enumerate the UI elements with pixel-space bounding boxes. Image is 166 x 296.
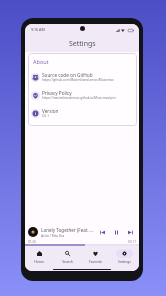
staticText: Home bbox=[34, 259, 44, 264]
staticText: 01:26 bbox=[28, 240, 36, 243]
staticText: Lonely Together (Feat. R... bbox=[41, 227, 95, 233]
staticText: Privacy Policy bbox=[42, 90, 72, 96]
staticText: 9:16 AM bbox=[31, 27, 45, 32]
button[interactable]: Settings bbox=[110, 249, 139, 264]
staticText: 0.0.1 bbox=[42, 114, 49, 118]
button[interactable]: Favorite bbox=[81, 249, 110, 264]
staticText: Favorite bbox=[89, 259, 102, 264]
button[interactable]: Source code on GitHub bbox=[28, 68, 137, 86]
staticText: Settings bbox=[69, 39, 96, 49]
staticText: Settings bbox=[118, 259, 131, 264]
staticText: https://github.com/MaximilianoLemos/Musi… bbox=[42, 78, 114, 82]
button[interactable]: Privacy Policy bbox=[28, 86, 137, 104]
button[interactable]: Version bbox=[28, 104, 137, 122]
button[interactable]: Search bbox=[53, 249, 81, 264]
staticText: About bbox=[33, 58, 49, 65]
staticText: Search bbox=[62, 259, 73, 264]
staticText: Source code on GitHub bbox=[42, 72, 93, 78]
button[interactable]: Previous bbox=[95, 225, 109, 239]
staticText: Avicii / Rita Ora bbox=[41, 233, 65, 237]
staticText: Version bbox=[42, 108, 59, 114]
staticText: 03:11 bbox=[128, 240, 136, 243]
staticText: https://maximilianolemos.github.io/Music… bbox=[42, 96, 116, 100]
button[interactable]: Home bbox=[25, 249, 53, 264]
button[interactable]: Next bbox=[123, 225, 137, 239]
button[interactable]: Pause bbox=[109, 225, 123, 239]
